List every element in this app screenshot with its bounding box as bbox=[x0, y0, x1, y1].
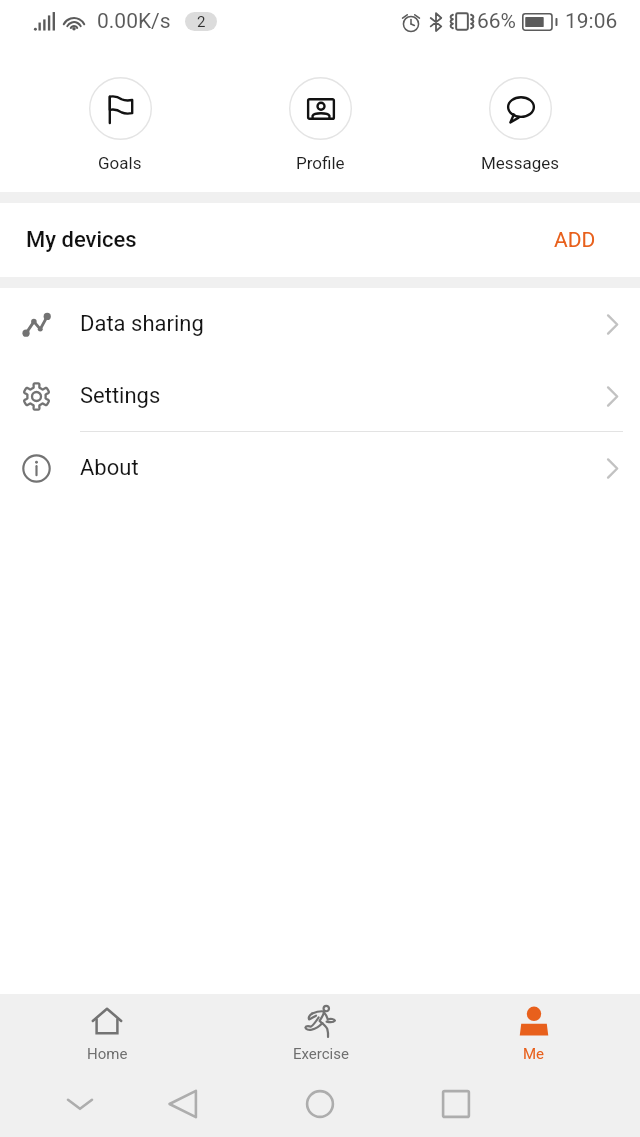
button[interactable]: Data sharing bbox=[0, 288, 640, 360]
staticText: Data sharing bbox=[80, 311, 204, 337]
button[interactable]: Me bbox=[427, 994, 640, 1070]
staticText: 0.00K/s bbox=[97, 9, 171, 34]
staticText: Profile bbox=[296, 153, 345, 173]
button[interactable]: Settings bbox=[0, 360, 640, 432]
staticText: 2 bbox=[197, 13, 206, 31]
button[interactable]: Profile bbox=[220, 42, 420, 192]
staticText: Settings bbox=[80, 383, 161, 409]
button[interactable]: Home bbox=[0, 994, 214, 1070]
button[interactable]: ADD bbox=[532, 203, 640, 277]
staticText: ADD bbox=[554, 228, 596, 253]
staticText: Me bbox=[523, 1045, 545, 1063]
button[interactable]: Home bbox=[290, 1074, 350, 1134]
staticText: 19:06 bbox=[565, 9, 618, 34]
staticText: Home bbox=[87, 1045, 128, 1063]
staticText: About bbox=[80, 455, 139, 481]
staticText: 66% bbox=[477, 9, 516, 34]
button[interactable]: About bbox=[0, 432, 640, 504]
button[interactable]: My devices bbox=[0, 203, 532, 277]
button[interactable]: Hide keyboard bbox=[50, 1074, 110, 1134]
button[interactable]: Exercise bbox=[214, 994, 427, 1070]
staticText: Messages bbox=[481, 153, 559, 173]
button[interactable]: Messages bbox=[420, 42, 620, 192]
staticText: My devices bbox=[26, 227, 137, 253]
button[interactable]: Recent apps bbox=[426, 1074, 486, 1134]
staticText: Exercise bbox=[293, 1045, 349, 1063]
button[interactable]: Back bbox=[153, 1074, 213, 1134]
button[interactable]: Goals bbox=[20, 42, 220, 192]
staticText: Goals bbox=[98, 153, 142, 173]
